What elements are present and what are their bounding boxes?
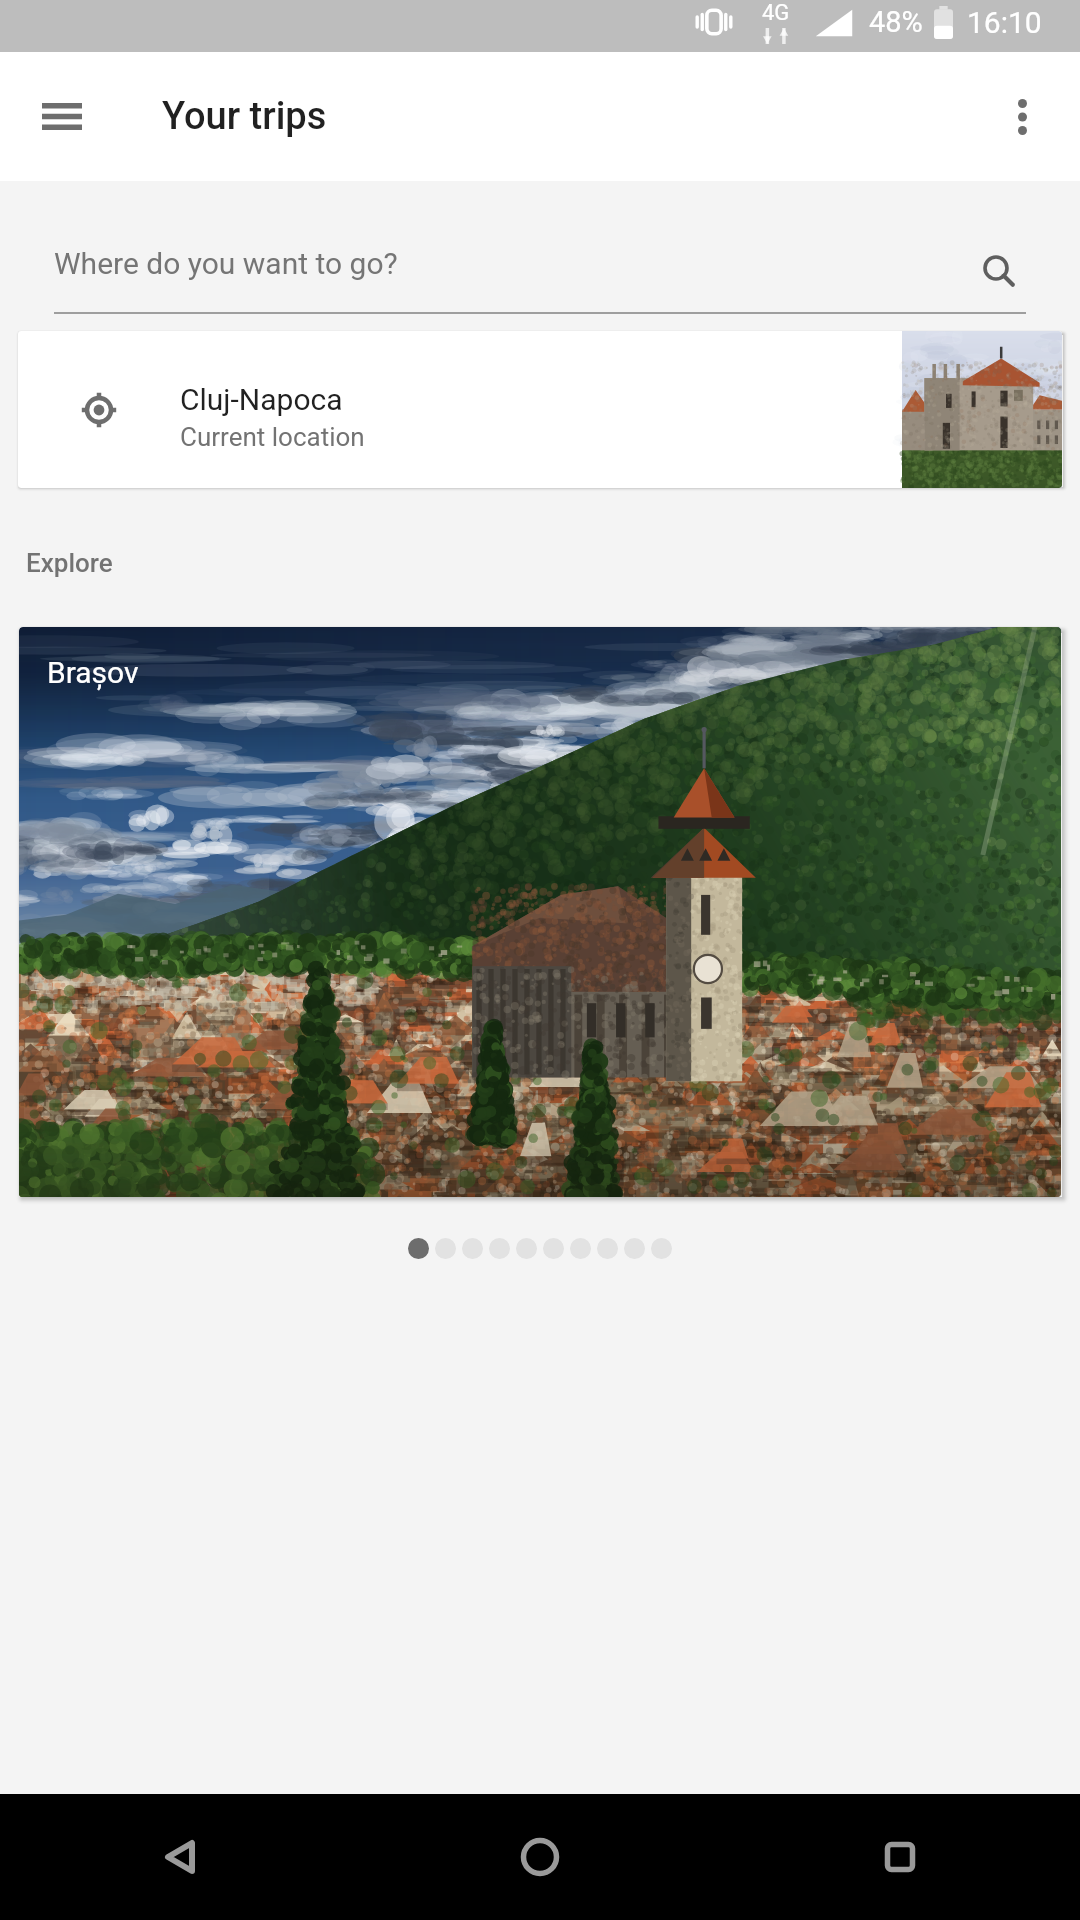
button[interactable]: Cluj-Napoca [18,331,1062,488]
button[interactable] [543,1238,564,1259]
button[interactable] [435,1238,456,1259]
button[interactable]: More options [964,52,1080,181]
staticText: Explore [26,548,113,578]
button[interactable] [516,1238,537,1259]
button[interactable] [597,1238,618,1259]
button[interactable] [408,1238,429,1259]
button[interactable] [489,1238,510,1259]
staticText: Where do you want to go? [54,246,398,281]
staticText: 48% [869,5,923,39]
staticText: Current location [180,422,365,452]
button[interactable] [651,1238,672,1259]
button[interactable]: Brașov [19,627,1061,1197]
button[interactable]: Recent apps [720,1794,1080,1920]
button[interactable]: Open navigation drawer [0,52,124,181]
button[interactable] [462,1238,483,1259]
button[interactable]: Back [0,1794,360,1920]
staticText: 4G [762,0,790,26]
staticText: 16:10 [967,5,1042,40]
staticText: Your trips [162,94,327,139]
button[interactable]: Where do you want to go? [54,215,1040,312]
button[interactable]: Search [964,236,1028,300]
button[interactable] [624,1238,645,1259]
button[interactable]: Home [360,1794,720,1920]
staticText: Brașov [47,655,139,690]
button[interactable] [570,1238,591,1259]
staticText: Cluj-Napoca [180,382,343,417]
